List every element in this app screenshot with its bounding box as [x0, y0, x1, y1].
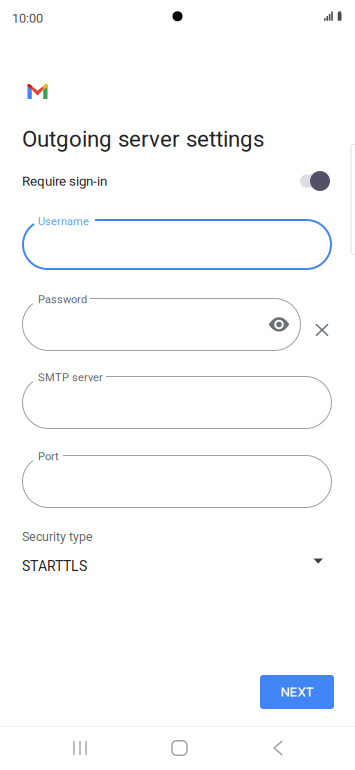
- staticText: Security type: [22, 529, 93, 544]
- button[interactable]: NEXT: [260, 675, 334, 709]
- staticText: STARTTLS: [22, 558, 87, 574]
- staticText: NEXT: [280, 684, 313, 700]
- button[interactable]: Back: [255, 726, 301, 770]
- staticText: Password: [38, 293, 87, 306]
- staticText: Username: [38, 215, 89, 228]
- button[interactable]: Home: [156, 726, 202, 770]
- staticText: SMTP server: [38, 371, 103, 384]
- button[interactable]: Show password: [264, 311, 294, 337]
- staticText: 10:00: [12, 11, 43, 26]
- button[interactable]: STARTTLS: [22, 558, 332, 576]
- staticText: Outgoing server settings: [22, 126, 264, 152]
- button[interactable]: Require sign-in: [300, 167, 336, 195]
- button[interactable]: Recents: [57, 726, 103, 770]
- button[interactable]: Clear: [308, 316, 336, 344]
- staticText: Require sign-in: [22, 173, 107, 189]
- staticText: Port: [38, 450, 59, 463]
